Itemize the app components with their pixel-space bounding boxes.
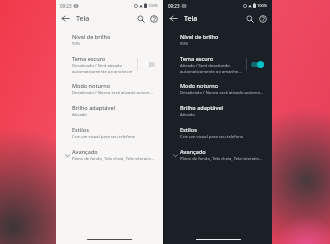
button[interactable]: Avançado xyxy=(168,145,268,165)
staticText: 90% xyxy=(180,41,189,47)
button[interactable]: Estilos xyxy=(60,123,159,143)
staticText: Desativado / Nunca será ativado automati… xyxy=(72,90,155,96)
button[interactable]: Avançado xyxy=(60,145,159,165)
staticText: Tela xyxy=(184,14,198,24)
staticText: 90% xyxy=(72,41,81,47)
staticText: Tema escuro xyxy=(180,55,214,62)
button[interactable]: Pesquisar xyxy=(244,13,255,24)
staticText: Modo noturno xyxy=(180,82,219,89)
staticText: 100% xyxy=(148,3,159,8)
button[interactable]: Tema escuro xyxy=(60,52,159,77)
staticText: Crie um visual para seu telefone xyxy=(180,134,244,140)
button[interactable]: Alternar tema escuro xyxy=(251,61,264,68)
button[interactable]: Ajuda xyxy=(257,13,268,24)
button[interactable]: Nível de brilho xyxy=(60,30,159,50)
staticText: Avançado xyxy=(72,148,98,155)
button[interactable]: Voltar xyxy=(60,13,71,24)
button[interactable]: Tema escuro xyxy=(168,52,268,77)
button[interactable]: Voltar xyxy=(168,13,179,24)
staticText: 100% xyxy=(257,3,268,8)
button[interactable]: Ajuda xyxy=(148,13,159,24)
staticText: Brilho adaptável xyxy=(180,104,224,111)
button[interactable]: Nível de brilho xyxy=(168,30,268,50)
staticText: 09:23 xyxy=(168,3,180,9)
button[interactable]: Brilho adaptável xyxy=(60,101,159,121)
staticText: Tema escuro xyxy=(72,55,106,62)
staticText: Estilos xyxy=(180,126,197,133)
staticText: Brilho adaptável xyxy=(72,104,116,111)
staticText: Avançado xyxy=(180,148,206,155)
staticText: Desativado / Nunca será ativado automati… xyxy=(180,90,264,96)
staticText: Desativado / Será ativado automaticament… xyxy=(72,63,133,74)
button[interactable]: Modo noturno xyxy=(168,79,268,99)
staticText: Plano de fundo, Tela cheia, Tela interat… xyxy=(72,156,155,162)
staticText: Tela xyxy=(76,14,90,24)
button[interactable]: Brilho adaptável xyxy=(168,101,268,121)
staticText: Nível de brilho xyxy=(72,33,111,40)
staticText: Ativado xyxy=(72,112,87,118)
staticText: Crie um visual para seu telefone xyxy=(72,134,136,140)
button[interactable]: Estilos xyxy=(168,123,268,143)
staticText: Nível de brilho xyxy=(180,33,219,40)
staticText: Ativado / Será desativado automaticament… xyxy=(180,63,243,74)
staticText: Modo noturno xyxy=(72,82,111,89)
staticText: Estilos xyxy=(72,126,89,133)
button[interactable]: Alternar tema escuro xyxy=(142,61,155,68)
button[interactable]: Pesquisar xyxy=(135,13,146,24)
button[interactable]: Modo noturno xyxy=(60,79,159,99)
staticText: Plano de fundo, Tela cheia, Tela interat… xyxy=(180,156,264,162)
staticText: 09:23 xyxy=(60,3,72,9)
staticText: Ativado xyxy=(180,112,195,118)
